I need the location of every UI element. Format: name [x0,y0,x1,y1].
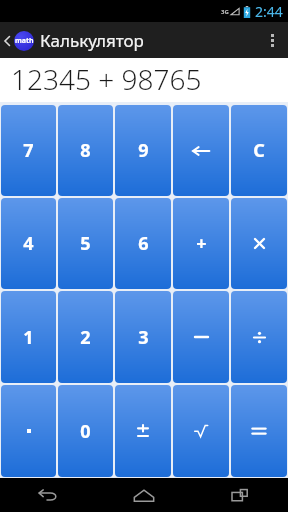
button[interactable]: 7 [1,105,56,196]
staticText: 6 [138,231,149,256]
button[interactable]: Backspace [173,105,229,196]
button[interactable]: + [173,198,229,289]
button[interactable]: Decimal point [1,385,56,477]
staticText: 4 [23,231,34,256]
staticText: 1 [23,325,34,350]
button[interactable]: C [231,105,287,196]
button[interactable]: 5 [58,198,113,289]
staticText: 5 [80,231,91,256]
button[interactable]: 8 [58,105,113,196]
button[interactable]: 6 [115,198,171,289]
other: Back [3,33,12,49]
button[interactable]: 9 [115,105,171,196]
staticText: Калькулятор [40,29,144,52]
staticText: 12345 + 98765 [11,60,202,98]
button[interactable]: Equals [231,385,287,477]
staticText: 2 [80,325,91,350]
button[interactable]: Multiply [231,198,287,289]
staticText: 3G [221,8,229,16]
button[interactable]: Divide [231,291,287,383]
button[interactable]: Back [0,478,96,512]
button[interactable]: 1 [1,291,56,383]
button[interactable]: Square root [173,385,229,477]
button[interactable]: 4 [1,198,56,289]
staticText: 9 [138,138,149,163]
button[interactable]: Recent apps [192,478,288,512]
button[interactable]: 2 [58,291,113,383]
button[interactable]: Subtract [173,291,229,383]
button[interactable]: 3 [115,291,171,383]
button[interactable]: 0 [58,385,113,477]
button[interactable]: Back [3,29,144,52]
staticText: + [196,231,207,256]
staticText: 2:44 [255,2,283,21]
button[interactable]: Plus minus [115,385,171,477]
button[interactable]: Home [96,478,192,512]
staticText: 3 [138,325,149,350]
staticText: 8 [80,138,91,163]
button[interactable]: More options [256,22,288,58]
staticText: 7 [23,138,34,163]
staticText: math [15,36,34,46]
staticText: C [253,138,265,163]
staticText: 0 [80,419,91,444]
